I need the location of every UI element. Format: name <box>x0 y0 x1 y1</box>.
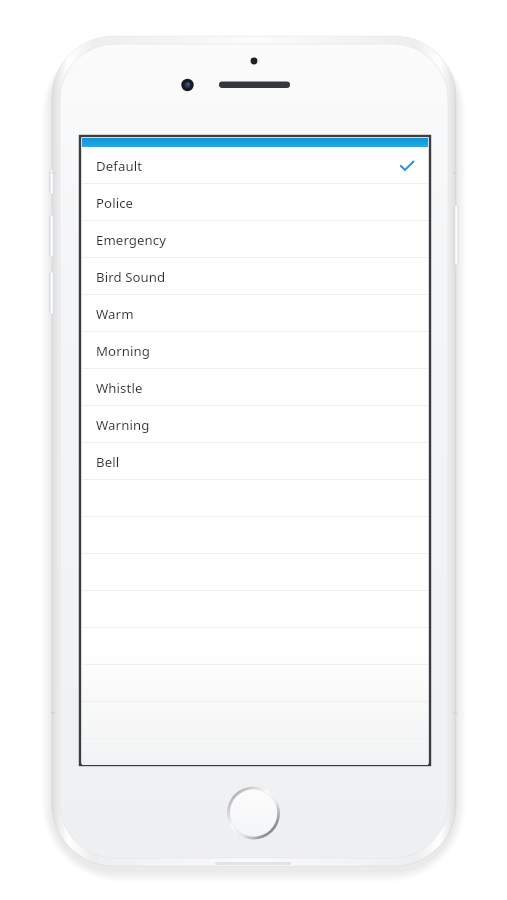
staticText: Whistle <box>96 379 143 397</box>
staticText: Bell <box>96 453 120 471</box>
staticText: Warm <box>96 305 134 323</box>
button[interactable]: Emergency <box>82 221 428 258</box>
button[interactable]: Warm <box>82 295 428 332</box>
staticText: Police <box>96 194 134 212</box>
button[interactable]: Bird Sound <box>82 258 428 295</box>
button[interactable]: Warning <box>82 406 428 443</box>
button[interactable]: Bell <box>82 443 428 480</box>
staticText: Bird Sound <box>96 268 166 286</box>
button[interactable]: Police <box>82 184 428 221</box>
button[interactable]: Morning <box>82 332 428 369</box>
staticText: Warning <box>96 416 150 434</box>
staticText: Default <box>96 157 143 175</box>
staticText: Emergency <box>96 231 167 249</box>
button[interactable]: Default <box>82 147 428 184</box>
staticText: Morning <box>96 342 150 360</box>
button[interactable]: Whistle <box>82 369 428 406</box>
